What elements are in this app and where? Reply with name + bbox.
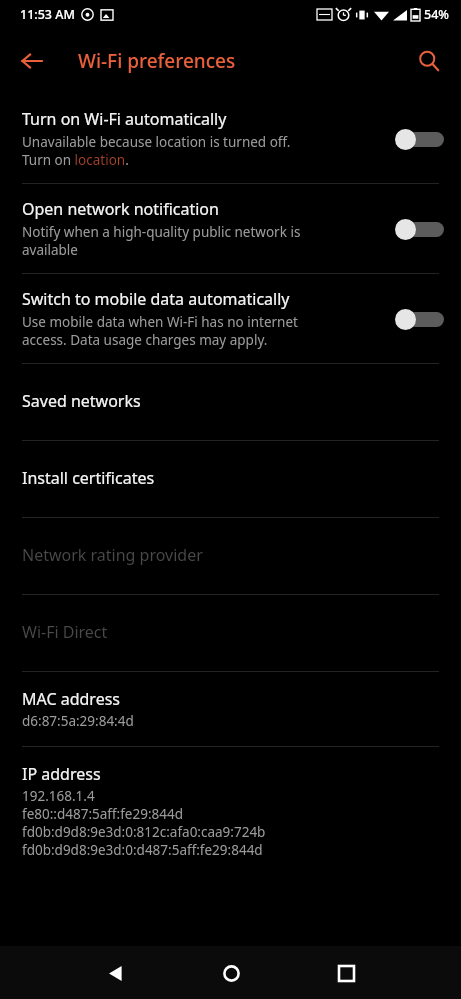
button[interactable]: Wi-Fi Direct [0, 595, 461, 671]
staticText: fe80::d487:5aff:fe29:844d [22, 805, 184, 823]
staticText: IP address [22, 763, 101, 785]
button[interactable]: Search [405, 37, 453, 85]
staticText: MAC address [22, 688, 120, 710]
staticText: fd0b:d9d8:9e3d:0:812c:afa0:caa9:724b [22, 823, 266, 841]
staticText: Wi-Fi preferences [78, 48, 236, 74]
staticText: Notify when a high-quality public networ… [22, 223, 301, 259]
button[interactable]: Switch to mobile data automatically [0, 274, 461, 363]
staticText: 11:53 AM [20, 6, 75, 23]
staticText: 192.168.1.4 [22, 787, 95, 805]
staticText: Switch to mobile data automatically [22, 288, 290, 310]
button[interactable]: Home [207, 949, 255, 997]
staticText: Unavailable because location is turned o… [22, 133, 291, 151]
button[interactable]: Turn on Wi-Fi automatically [0, 94, 461, 183]
staticText: Open network notification [22, 198, 219, 220]
staticText: Turn on Wi-Fi automatically [22, 108, 227, 130]
button[interactable]: Network rating provider [0, 518, 461, 594]
staticText: fd0b:d9d8:9e3d:0:d487:5aff:fe29:844d [22, 841, 263, 859]
staticText: Wi-Fi Direct [22, 621, 108, 643]
staticText: Turn on location. [22, 151, 129, 169]
button[interactable]: IP address [0, 747, 461, 875]
button[interactable]: Recent apps [322, 949, 370, 997]
button[interactable]: Back [91, 949, 139, 997]
button[interactable]: Navigate up [8, 37, 56, 85]
staticText: Network rating provider [22, 544, 203, 566]
staticText: Use mobile data when Wi-Fi has no intern… [22, 313, 298, 349]
button[interactable]: Install certificates [0, 441, 461, 517]
staticText: Install certificates [22, 467, 155, 489]
button[interactable]: Saved networks [0, 364, 461, 440]
staticText: Saved networks [22, 390, 141, 412]
staticText: d6:87:5a:29:84:4d [22, 712, 134, 730]
button[interactable]: Open network notification [0, 184, 461, 273]
staticText: 54% [424, 6, 449, 23]
button[interactable]: MAC address [0, 672, 461, 746]
